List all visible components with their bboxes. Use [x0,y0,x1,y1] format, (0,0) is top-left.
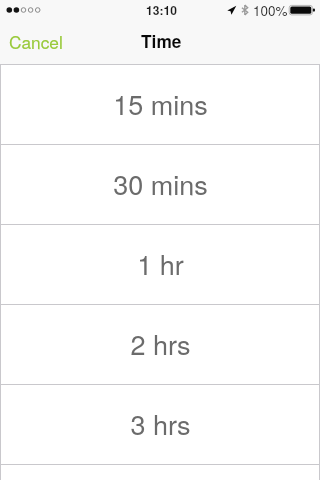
button[interactable]: 2 hrs [0,305,320,385]
button[interactable]: 1 hr [0,225,320,305]
staticText: 15 mins [113,84,208,123]
staticText: Time [141,29,182,54]
staticText: 13:10 [146,1,177,18]
button[interactable]: 30 mins [0,145,320,225]
button[interactable]: Cancel [0,20,73,64]
staticText: 3 hrs [130,404,191,443]
staticText: Cancel [9,29,63,54]
button[interactable] [0,465,320,480]
button[interactable]: 15 mins [0,65,320,145]
button[interactable]: 3 hrs [0,385,320,465]
staticText: 30 mins [113,164,208,203]
staticText: 2 hrs [130,324,191,363]
staticText: 100% [253,1,288,20]
staticText: 1 hr [137,244,184,283]
